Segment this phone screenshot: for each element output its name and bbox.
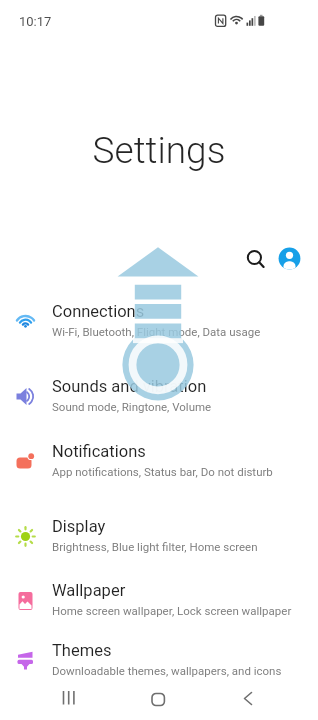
- staticText: Sounds and vibration: [52, 377, 207, 396]
- staticText: Themes: [52, 641, 112, 660]
- staticText: Wi-Fi, Bluetooth, Flight mode, Data usag…: [52, 325, 261, 338]
- button[interactable]: [242, 245, 268, 271]
- button[interactable]: Display: [0, 507, 318, 565]
- staticText: Wallpaper: [52, 581, 126, 600]
- staticText: 10:17: [19, 14, 52, 29]
- staticText: Notifications: [52, 442, 146, 461]
- staticText: Settings: [0, 129, 318, 172]
- button[interactable]: [278, 247, 301, 270]
- button[interactable]: Wallpaper: [0, 571, 318, 629]
- staticText: Connections: [52, 302, 145, 321]
- button[interactable]: [227, 684, 269, 716]
- button[interactable]: Sounds and vibration: [0, 367, 318, 425]
- staticText: Downloadable themes, wallpapers, and ico…: [52, 664, 282, 677]
- staticText: Display: [52, 517, 106, 536]
- button[interactable]: Themes: [0, 631, 318, 689]
- button[interactable]: Notifications: [0, 432, 318, 490]
- staticText: App notifications, Status bar, Do not di…: [52, 465, 273, 478]
- button[interactable]: [48, 684, 90, 716]
- staticText: Home screen wallpaper, Lock screen wallp…: [52, 604, 292, 617]
- button[interactable]: Connections: [0, 292, 318, 350]
- staticText: Brightness, Blue light filter, Home scre…: [52, 540, 258, 553]
- staticText: Sound mode, Ringtone, Volume: [52, 400, 212, 413]
- button[interactable]: [137, 684, 179, 716]
